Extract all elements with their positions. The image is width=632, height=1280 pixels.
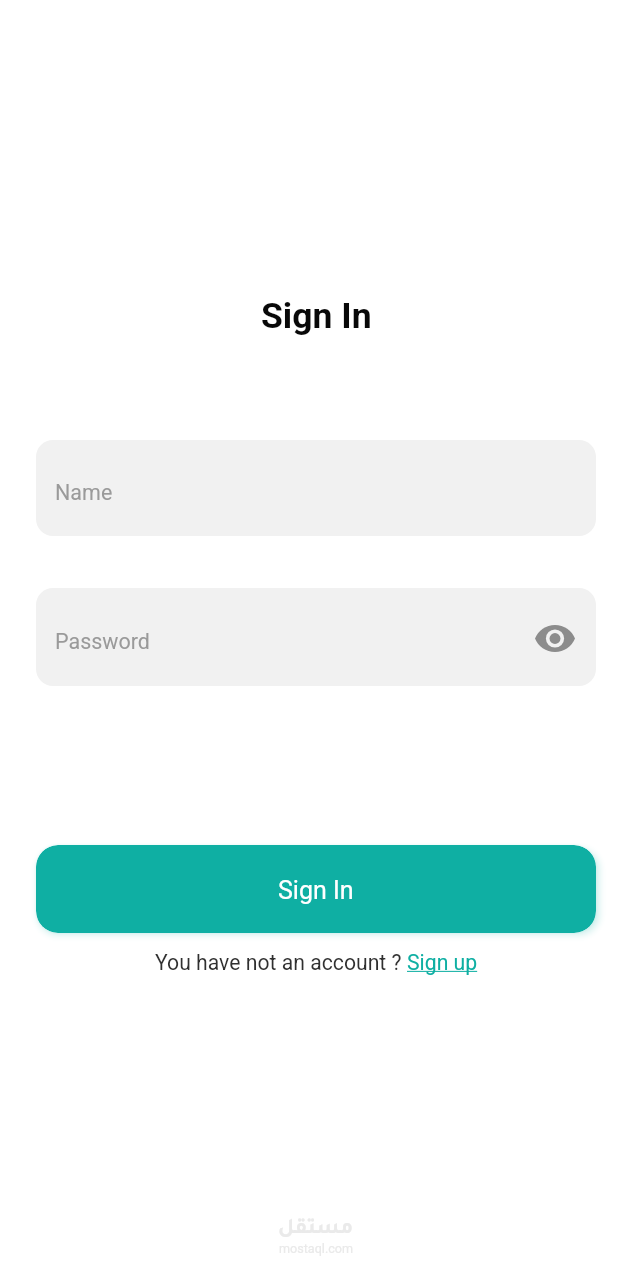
button[interactable]: Sign up (407, 950, 478, 975)
staticText: Sign In (261, 295, 372, 337)
staticText: مستقل (278, 1219, 354, 1241)
button[interactable]: Password (36, 588, 596, 686)
staticText: mostaql.com (279, 1241, 354, 1256)
staticText: You have not an account ? (155, 950, 407, 975)
staticText: Name (55, 480, 113, 505)
button[interactable]: Sign In (36, 845, 596, 933)
staticText: Sign In (278, 876, 354, 905)
button[interactable]: Show password (531, 614, 579, 662)
button[interactable]: Name (36, 440, 596, 536)
staticText: Password (55, 629, 150, 654)
